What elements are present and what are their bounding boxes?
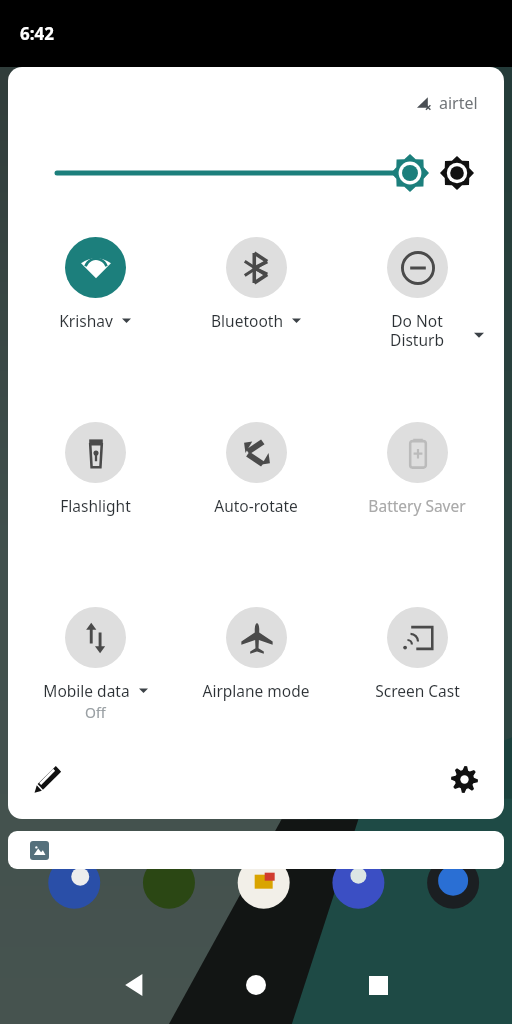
button[interactable]: Screen Cast bbox=[337, 604, 497, 754]
button[interactable]: Krishav bbox=[15, 234, 175, 384]
button[interactable]: Battery Saver bbox=[337, 419, 497, 569]
staticText: Off bbox=[85, 703, 106, 722]
button[interactable]: Airplane mode bbox=[176, 604, 336, 754]
staticText: airtel bbox=[439, 92, 478, 114]
button[interactable]: Auto brightness bbox=[436, 152, 478, 194]
staticText: Do Not Disturb bbox=[390, 310, 444, 350]
staticText: 6:42 bbox=[20, 22, 54, 45]
button[interactable]: Back bbox=[108, 959, 160, 1011]
button[interactable] bbox=[8, 831, 504, 869]
staticText: Auto-rotate bbox=[214, 495, 298, 516]
staticText: Flashlight bbox=[60, 495, 131, 516]
staticText: Krishav bbox=[59, 310, 113, 331]
button[interactable]: Do Not Disturb bbox=[337, 234, 497, 384]
button[interactable]: Auto-rotate bbox=[176, 419, 336, 569]
button[interactable]: Mobile data bbox=[15, 604, 175, 754]
button[interactable]: Home bbox=[230, 959, 282, 1011]
button[interactable]: Bluetooth bbox=[176, 234, 336, 384]
staticText: Airplane mode bbox=[202, 680, 310, 701]
staticText: Mobile data bbox=[43, 680, 130, 701]
button[interactable]: Flashlight bbox=[15, 419, 175, 569]
button[interactable]: Settings bbox=[438, 753, 490, 805]
button[interactable]: Brightness bbox=[8, 145, 504, 201]
button[interactable]: Recents bbox=[352, 959, 404, 1011]
staticText: Bluetooth bbox=[211, 310, 283, 331]
button[interactable]: Edit bbox=[22, 753, 74, 805]
staticText: Screen Cast bbox=[375, 680, 460, 701]
staticText: Battery Saver bbox=[368, 495, 466, 516]
